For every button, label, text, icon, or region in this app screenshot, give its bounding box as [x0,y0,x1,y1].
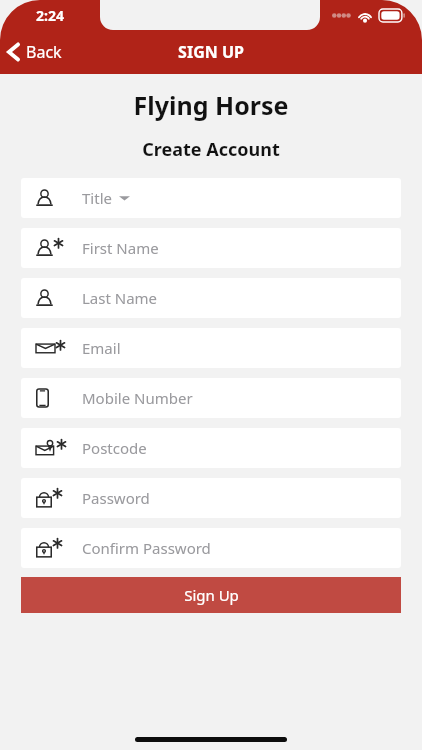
button[interactable]: Last Name [21,278,401,318]
button[interactable]: Postcode [21,428,401,468]
staticText: Create Account [0,137,422,162]
staticText: Sign Up [184,585,239,605]
staticText: Postcode [82,438,147,458]
staticText: Last Name [82,288,158,308]
staticText: SIGN UP [178,41,244,63]
button[interactable]: First Name [21,228,401,268]
staticText: Password [82,488,150,508]
button[interactable]: Sign Up [21,577,401,613]
staticText: Title [82,188,112,208]
staticText: Flying Horse [0,88,422,122]
staticText: Email [82,338,121,358]
staticText: 2:24 [36,6,64,25]
button[interactable]: Password [21,478,401,518]
button[interactable]: Confirm Password [21,528,401,568]
button[interactable]: Back [0,35,72,69]
staticText: Confirm Password [82,538,211,558]
staticText: Back [26,41,62,63]
button[interactable]: Mobile Number [21,378,401,418]
button[interactable]: Email [21,328,401,368]
staticText: Mobile Number [82,388,193,408]
staticText: First Name [82,238,159,258]
button[interactable]: Title [21,178,401,218]
